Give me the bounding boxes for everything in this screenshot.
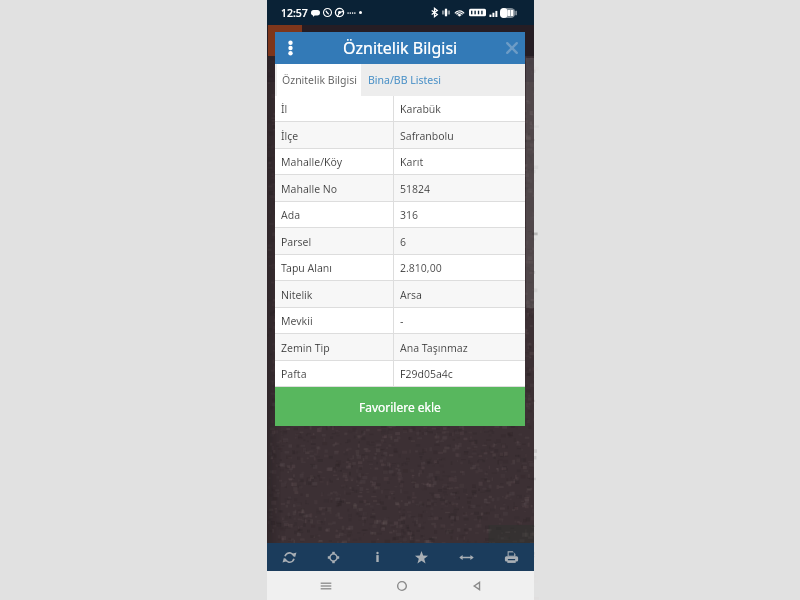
staticText: Mahalle No bbox=[281, 182, 338, 196]
button[interactable]: Bina/BB Listesi bbox=[361, 64, 525, 96]
button[interactable]: Back bbox=[439, 571, 514, 600]
button[interactable]: Home bbox=[364, 571, 439, 600]
staticText: Mahalle/Köy bbox=[281, 155, 343, 169]
staticText: 6 bbox=[400, 235, 407, 249]
staticText: Karabük bbox=[400, 102, 441, 116]
staticText: Öznitelik Bilgisi bbox=[282, 73, 357, 87]
staticText: Mevkii bbox=[281, 314, 313, 328]
button[interactable]: Info bbox=[355, 543, 399, 571]
staticText: 2.810,00 bbox=[400, 261, 442, 275]
staticText: Safranbolu bbox=[400, 129, 454, 143]
button[interactable]: Print bbox=[489, 543, 534, 571]
staticText: Parsel bbox=[281, 235, 312, 249]
staticText: - bbox=[400, 314, 404, 328]
staticText: İl bbox=[281, 102, 288, 116]
staticText: Öznitelik Bilgisi bbox=[343, 37, 458, 59]
button[interactable]: Öznitelik Bilgisi bbox=[277, 64, 361, 96]
staticText: Ana Taşınmaz bbox=[400, 341, 468, 355]
button[interactable]: Refresh bbox=[267, 543, 311, 571]
button[interactable]: Favorilere ekle bbox=[275, 387, 525, 426]
staticText: 12:57 bbox=[281, 6, 308, 20]
button[interactable]: Measure bbox=[444, 543, 489, 571]
staticText: Nitelik bbox=[281, 288, 313, 302]
staticText: Bina/BB Listesi bbox=[368, 73, 441, 87]
button[interactable]: Recents bbox=[288, 571, 364, 600]
staticText: Ada bbox=[281, 208, 301, 222]
staticText: F29d05a4c bbox=[400, 367, 453, 381]
staticText: Pafta bbox=[281, 367, 307, 381]
button[interactable]: More options bbox=[284, 39, 297, 57]
staticText: Favorilere ekle bbox=[359, 399, 441, 415]
staticText: 51824 bbox=[400, 182, 431, 196]
staticText: Tapu Alanı bbox=[281, 261, 333, 275]
button[interactable]: Locate bbox=[311, 543, 355, 571]
staticText: Zemin Tip bbox=[281, 341, 330, 355]
staticText: Arsa bbox=[400, 288, 422, 302]
button[interactable]: Favorite bbox=[399, 543, 444, 571]
button[interactable]: Close bbox=[506, 42, 518, 54]
staticText: 316 bbox=[400, 208, 419, 222]
staticText: İlçe bbox=[281, 129, 299, 143]
staticText: Karıt bbox=[400, 155, 424, 169]
